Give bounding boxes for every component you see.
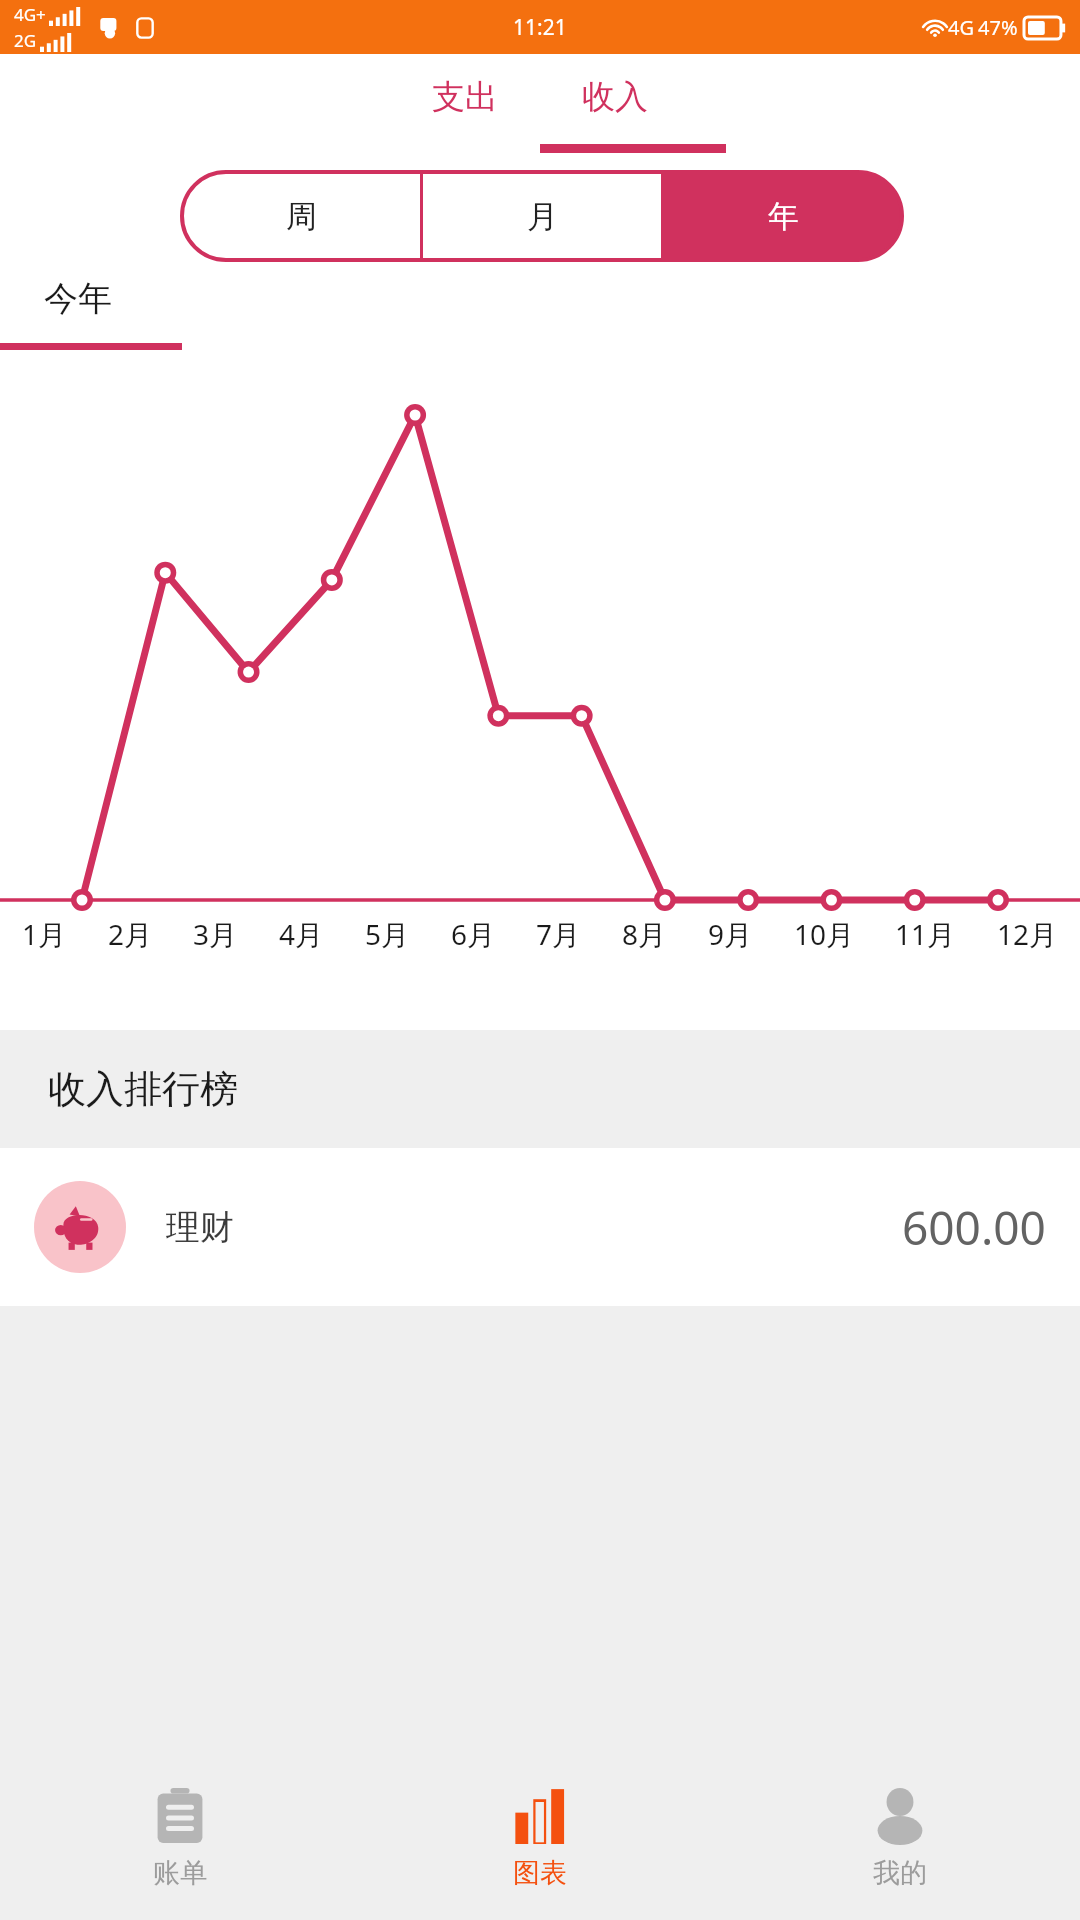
staticText: 9月 [708,915,753,953]
staticText: 6月 [451,915,496,953]
staticText: 2G [14,29,37,52]
button[interactable]: 月 [423,172,661,260]
button[interactable]: 我的 [720,1758,1080,1920]
staticText: 5月 [365,915,410,953]
staticText: 今年 [44,277,112,320]
staticText: 收入排行榜 [48,1065,238,1113]
button[interactable]: 年 [664,172,902,260]
staticText: 周 [286,197,317,236]
button[interactable]: 理财 [0,1148,1080,1306]
staticText: 7月 [536,915,581,953]
staticText: 600.00 [902,1196,1046,1259]
staticText: 1月 [22,915,67,953]
other: 我的 [872,1788,928,1844]
staticText: 账单 [153,1856,207,1890]
staticText: 4G+ [14,3,46,26]
button[interactable]: 支出 [390,76,540,118]
staticText: 11:21 [513,13,567,42]
staticText: 2月 [108,915,153,953]
staticText: 4月 [279,915,324,953]
staticText: 4G [948,14,974,41]
button[interactable]: 图表 [360,1758,720,1920]
staticText: 8月 [622,915,667,953]
staticText: 年 [768,197,799,236]
staticText: 10月 [794,915,855,953]
staticText: 支出 [432,76,498,118]
staticText: 月 [527,197,558,236]
staticText: 11月 [895,915,956,953]
staticText: 12月 [997,915,1058,953]
staticText: 3月 [193,915,238,953]
button[interactable]: 收入 [540,76,690,118]
button[interactable]: 账单 [0,1758,360,1920]
staticText: 我的 [873,1856,927,1890]
staticText: 47% [978,14,1018,41]
staticText: 收入 [582,76,648,118]
staticText: 理财 [166,1206,234,1249]
staticText: 图表 [513,1856,567,1890]
other: 图表 [512,1788,568,1844]
button[interactable]: 周 [182,172,420,260]
other: 账单 [152,1788,208,1844]
